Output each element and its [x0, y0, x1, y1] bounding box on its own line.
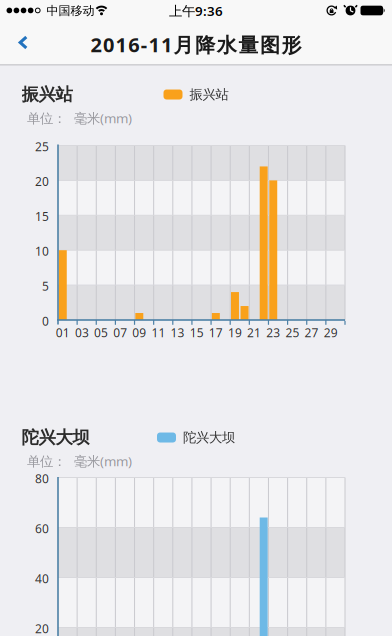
- button[interactable]: 振兴站: [163, 86, 228, 103]
- staticText: 陀兴大坝: [21, 427, 89, 448]
- staticText: 17: [209, 324, 223, 340]
- staticText: 单位： 毫米(mm): [27, 452, 132, 470]
- staticText: 60: [35, 520, 49, 536]
- staticText: 80: [35, 470, 49, 486]
- staticText: 陀兴大坝: [183, 429, 235, 446]
- staticText: 05: [94, 324, 108, 340]
- staticText: 11: [151, 324, 165, 340]
- staticText: 27: [304, 324, 318, 340]
- staticText: 29: [324, 324, 338, 340]
- staticText: 25: [285, 324, 299, 340]
- staticText: 40: [35, 570, 49, 586]
- staticText: 15: [190, 324, 204, 340]
- staticText: 中国移动: [46, 3, 94, 18]
- staticText: 19: [228, 324, 242, 340]
- staticText: 09: [132, 324, 146, 340]
- staticText: 0: [42, 313, 49, 329]
- staticText: 03: [75, 324, 89, 340]
- staticText: 20: [35, 620, 49, 636]
- staticText: 13: [171, 324, 185, 340]
- staticText: 20: [35, 173, 49, 189]
- button[interactable]: 陀兴大坝: [157, 429, 235, 446]
- staticText: 2016-11月降水量图形: [90, 31, 302, 58]
- staticText: 上午9:36: [169, 2, 223, 20]
- staticText: 01: [56, 324, 70, 340]
- button[interactable]: [0, 20, 44, 64]
- staticText: 15: [35, 208, 49, 224]
- staticText: 振兴站: [21, 84, 72, 105]
- staticText: 振兴站: [189, 86, 228, 103]
- staticText: 10: [35, 243, 49, 259]
- staticText: 25: [35, 138, 49, 154]
- staticText: 单位： 毫米(mm): [27, 109, 132, 127]
- staticText: 07: [113, 324, 127, 340]
- staticText: 21: [247, 324, 261, 340]
- staticText: 5: [42, 278, 49, 294]
- staticText: 23: [266, 324, 280, 340]
